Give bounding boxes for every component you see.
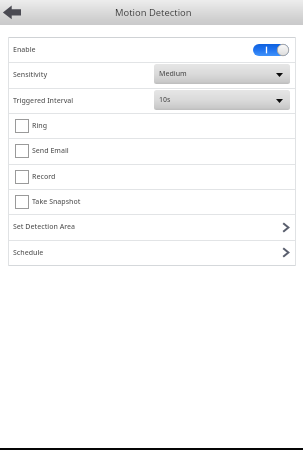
staticText: Set Detection Area [13,222,76,232]
button[interactable]: Send Email [8,138,296,164]
staticText: Record [32,172,56,182]
staticText: 10s [159,95,171,105]
staticText: Sensitivity [13,70,48,80]
button[interactable]: Record [8,164,296,189]
button[interactable]: Enable motion detection [253,44,289,56]
staticText: Motion Detection [115,6,192,19]
button[interactable]: Back [0,0,30,25]
button[interactable]: 10s [154,90,290,110]
button[interactable]: Schedule [8,240,296,265]
staticText: Medium [159,69,187,79]
button[interactable]: Set Detection Area [8,214,296,240]
staticText: Triggered Interval [13,96,74,106]
button[interactable]: Medium [154,64,290,84]
button[interactable]: Ring [8,113,296,138]
button[interactable]: Take Snapshot [8,189,296,214]
staticText: Take Snapshot [32,197,81,207]
staticText: Send Email [32,146,69,156]
staticText: Schedule [13,248,44,258]
staticText: Ring [32,121,48,131]
staticText: Enable [13,45,36,55]
